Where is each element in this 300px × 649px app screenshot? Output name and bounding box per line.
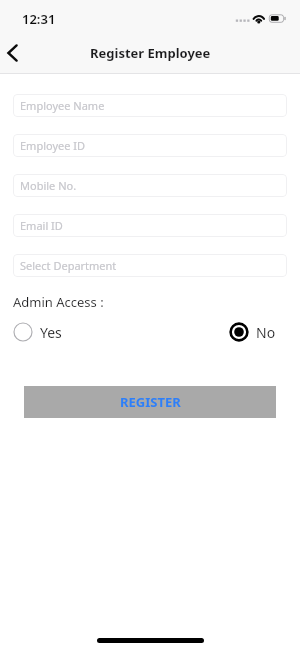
- staticText: Select Department: [20, 258, 117, 273]
- staticText: REGISTER: [120, 393, 181, 411]
- button[interactable]: Mobile No.: [13, 174, 287, 197]
- button[interactable]: Email ID: [13, 214, 287, 237]
- button[interactable]: Employee ID: [13, 134, 287, 157]
- staticText: Register Employee: [90, 44, 211, 62]
- staticText: Admin Access :: [13, 293, 104, 311]
- button[interactable]: Select Department: [13, 254, 287, 277]
- staticText: 12:31: [22, 10, 56, 28]
- staticText: Email ID: [20, 218, 63, 233]
- staticText: Mobile No.: [20, 178, 77, 193]
- button[interactable]: Back: [0, 41, 24, 65]
- button[interactable]: No: [229, 320, 276, 344]
- staticText: No: [256, 323, 276, 342]
- button[interactable]: Employee Name: [13, 94, 287, 117]
- button[interactable]: REGISTER: [24, 386, 276, 418]
- staticText: Yes: [40, 323, 62, 342]
- staticText: Employee Name: [20, 98, 105, 113]
- staticText: Employee ID: [20, 138, 86, 153]
- button[interactable]: Yes: [13, 320, 62, 344]
